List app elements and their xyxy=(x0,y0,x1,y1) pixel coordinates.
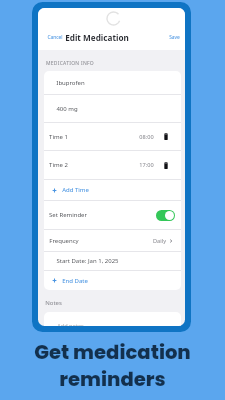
staticText: Add Time xyxy=(62,186,89,194)
button[interactable]: Start Date: Jan 1, 2025 xyxy=(44,252,181,270)
button[interactable]: Add Time xyxy=(44,180,181,200)
button[interactable]: Ibuprofen xyxy=(44,71,181,94)
staticText: 400 mg xyxy=(56,105,78,113)
button[interactable]: Cancel xyxy=(43,32,67,43)
button[interactable]: Delete Time 2 xyxy=(161,161,170,170)
staticText: Get medication xyxy=(34,338,191,365)
staticText: Time 2 xyxy=(49,161,68,169)
staticText: Time 1 xyxy=(49,133,68,141)
button[interactable]: End Date xyxy=(44,271,181,290)
staticText: 08:00 xyxy=(139,133,154,141)
staticText: End Date xyxy=(62,277,88,285)
button[interactable]: 400 mg xyxy=(44,95,181,122)
button[interactable]: Time 2 xyxy=(44,151,181,179)
staticText: Set Reminder xyxy=(49,211,87,219)
button[interactable]: Frequency xyxy=(44,230,181,251)
button[interactable]: Save xyxy=(166,32,183,43)
staticText: Save xyxy=(169,34,180,41)
staticText: Edit Medication xyxy=(65,32,129,43)
staticText: Daily xyxy=(153,237,166,245)
staticText: reminders xyxy=(59,365,166,392)
staticText: Add notes xyxy=(57,322,84,326)
button[interactable]: Add notes xyxy=(44,312,181,326)
staticText: Ibuprofen xyxy=(56,79,85,87)
staticText: 17:00 xyxy=(139,161,154,169)
button[interactable]: Time 1 xyxy=(44,123,181,150)
button[interactable]: Set Reminder toggle xyxy=(156,210,175,221)
staticText: Start Date: Jan 1, 2025 xyxy=(56,257,119,265)
staticText: Cancel xyxy=(47,34,63,41)
button[interactable]: Delete Time 1 xyxy=(161,132,170,141)
button[interactable]: Set Reminder xyxy=(44,201,181,229)
staticText: Notes xyxy=(45,299,62,307)
staticText: Frequency xyxy=(49,237,79,245)
staticText: MEDICATION INFO xyxy=(46,60,94,67)
